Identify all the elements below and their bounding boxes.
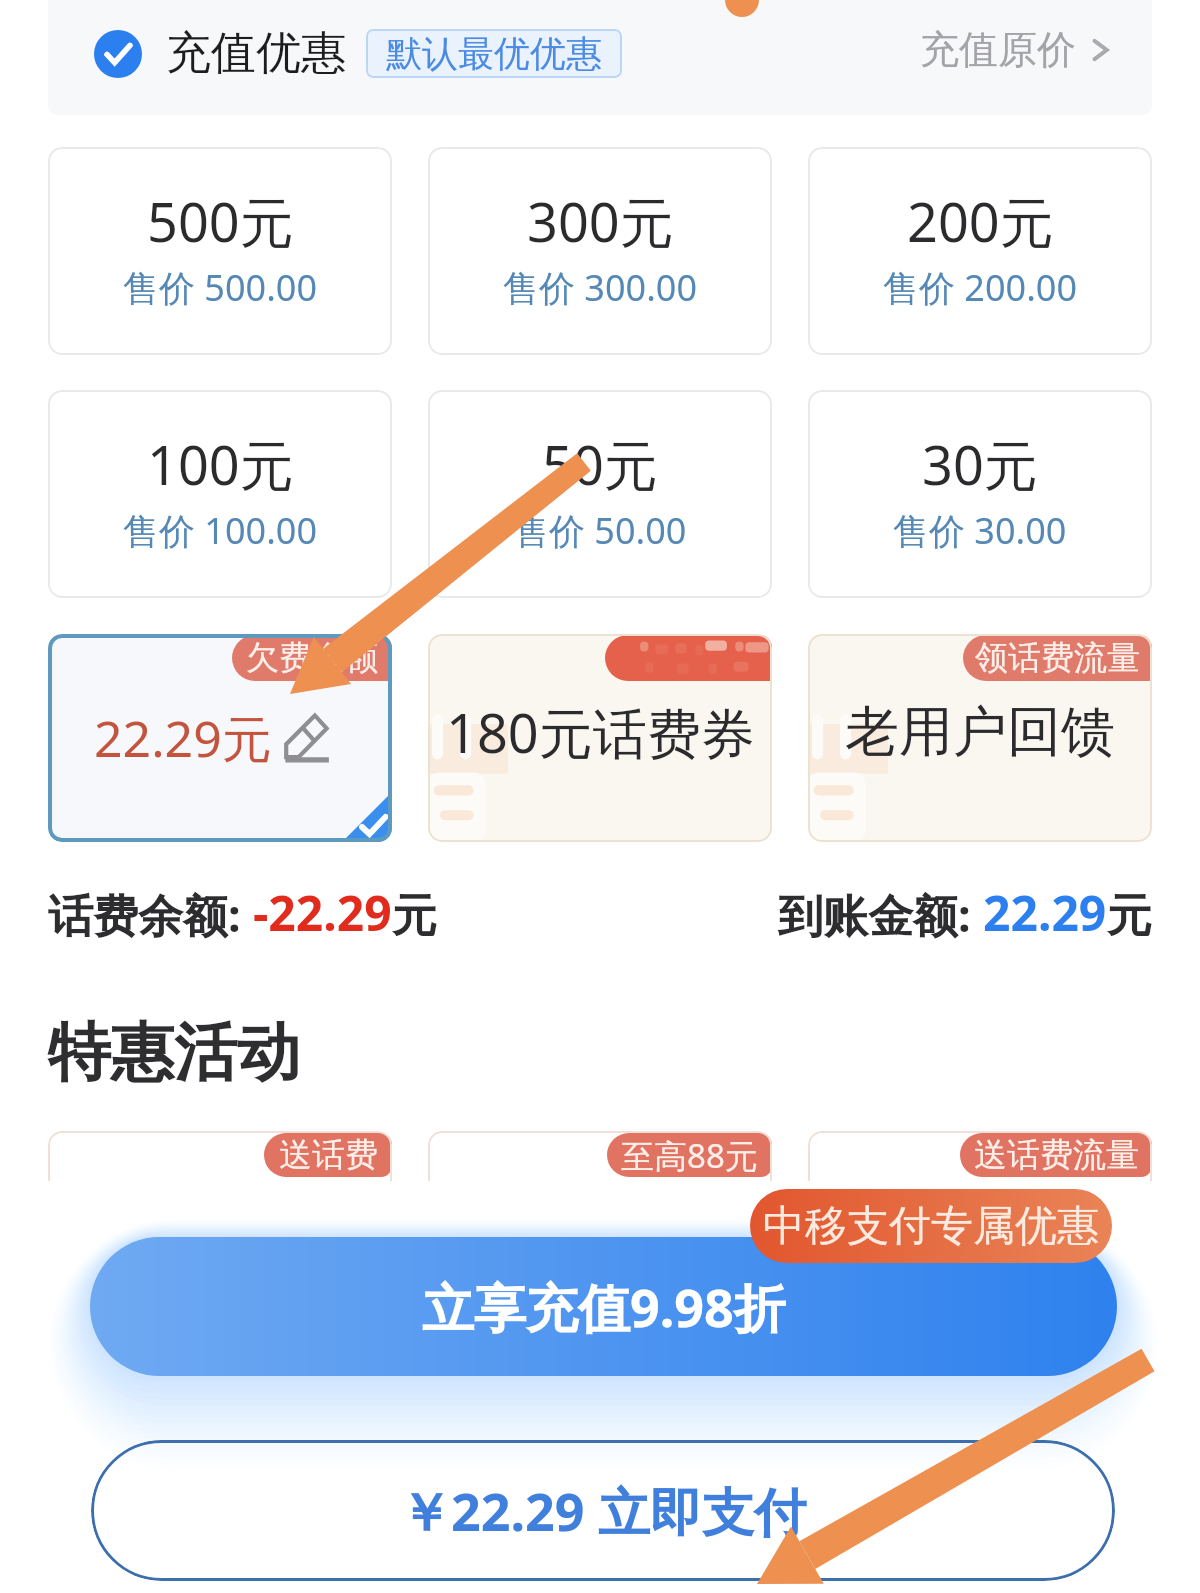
staticText: 元 xyxy=(1107,888,1152,945)
button[interactable]: 立享充值9.98折 xyxy=(90,1237,1117,1376)
staticText: 送话费流量 xyxy=(974,1134,1139,1176)
staticText: 送话费 xyxy=(279,1134,378,1176)
button[interactable]: 180元话费券 xyxy=(428,634,772,842)
staticText: 售价 30.00 xyxy=(893,506,1067,555)
staticText: 200元 xyxy=(907,184,1054,258)
staticText: 默认最优优惠 xyxy=(386,31,602,76)
staticText: 售价 50.00 xyxy=(513,506,687,555)
staticText: ￥22.29 立即支付 xyxy=(399,1475,807,1546)
staticText: 立享充值9.98折 xyxy=(422,1271,786,1342)
button[interactable]: 送话费流量 xyxy=(808,1131,1152,1351)
staticText: 元 xyxy=(392,888,437,945)
staticText: 售价 500.00 xyxy=(123,263,317,312)
other: 充值原价 xyxy=(1088,37,1114,63)
staticText: -22.29 xyxy=(253,880,392,945)
staticText: 22.29 xyxy=(983,880,1107,945)
staticText: 500元 xyxy=(147,184,294,258)
button[interactable]: ￥22.29 立即支付 xyxy=(91,1440,1115,1581)
staticText: 30元 xyxy=(922,427,1038,501)
other: 编辑金额 xyxy=(284,714,328,762)
button[interactable]: 100元 xyxy=(48,390,392,598)
button[interactable]: 300元 xyxy=(428,147,772,355)
staticText: 100元 xyxy=(147,427,294,501)
staticText: 售价 100.00 xyxy=(123,506,317,555)
staticText: 中移支付专属优惠 xyxy=(763,1200,1099,1253)
button[interactable]: 22.29元 xyxy=(48,634,392,842)
staticText: 300元 xyxy=(527,184,674,258)
staticText: 22.29元 xyxy=(94,704,272,772)
button[interactable]: 500元 xyxy=(48,147,392,355)
staticText: 售价 200.00 xyxy=(883,263,1077,312)
staticText: 180元话费券 xyxy=(446,695,755,769)
button[interactable]: 送话费 xyxy=(48,1131,392,1351)
button[interactable]: 至高88元 xyxy=(428,1131,772,1351)
staticText: 至高88元 xyxy=(621,1133,758,1177)
button[interactable]: 200元 xyxy=(808,147,1152,355)
staticText: 50元 xyxy=(542,427,658,501)
button[interactable]: 中移支付专属优惠 xyxy=(750,1189,1112,1263)
staticText: 领话费流量 xyxy=(975,637,1140,679)
button[interactable]: 老用户回馈 xyxy=(808,634,1152,842)
staticText: 充值优惠 xyxy=(166,25,346,82)
staticText: 欠费金额 xyxy=(246,637,378,679)
button[interactable]: 充值优惠 xyxy=(48,0,1152,115)
staticText: 充值原价 xyxy=(920,25,1076,74)
staticText: 特惠活动 xyxy=(48,1013,300,1092)
staticText: 到账金额: xyxy=(778,884,983,945)
staticText: 话费余额: xyxy=(48,884,253,945)
button[interactable]: 30元 xyxy=(808,390,1152,598)
staticText: 售价 300.00 xyxy=(503,263,697,312)
staticText: 老用户回馈 xyxy=(845,698,1115,766)
button[interactable]: 50元 xyxy=(428,390,772,598)
